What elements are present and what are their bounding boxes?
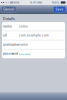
staticText: Cancel <box>3 8 14 11</box>
staticText: Details <box>3 16 15 21</box>
staticText: Save <box>56 8 64 11</box>
staticText: name <box>3 25 12 28</box>
staticText: 100% <box>52 1 61 4</box>
staticText: some <box>19 25 28 28</box>
staticText: url <box>3 34 7 37</box>
staticText: Mobile <box>9 1 20 4</box>
button[interactable]: Cancel <box>1 7 16 12</box>
staticText: name <box>19 43 28 46</box>
staticText: com.example.com <box>19 34 49 37</box>
staticText: username <box>3 43 19 46</box>
button[interactable]: Save <box>53 7 66 12</box>
staticText: 9:41 AM <box>30 1 41 4</box>
staticText: password <box>3 52 18 55</box>
staticText: •••••• <box>19 52 31 55</box>
